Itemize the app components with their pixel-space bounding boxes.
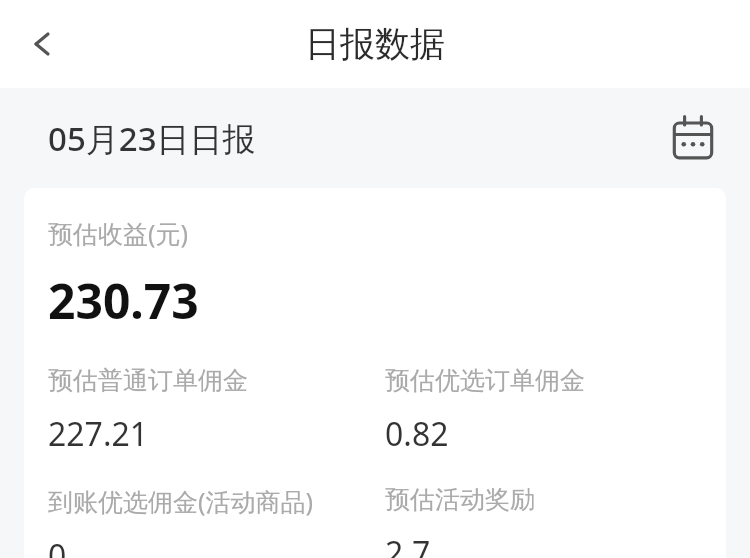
button[interactable]: Select date	[666, 111, 720, 165]
staticText: 227.21	[48, 412, 149, 456]
staticText: 0	[48, 534, 67, 558]
staticText: 到账优选佣金(活动商品)	[48, 484, 314, 518]
staticText: 日报数据	[305, 22, 445, 66]
staticText: 230.73	[48, 268, 199, 333]
staticText: 预估活动奖励	[385, 484, 535, 515]
staticText: 预估优选订单佣金	[385, 365, 585, 396]
button[interactable]: Back	[14, 16, 70, 72]
staticText: 预估普通订单佣金	[48, 365, 248, 396]
button[interactable]: 预估收益(元)	[24, 188, 726, 558]
staticText: 2.7	[385, 531, 431, 558]
staticText: 0.82	[385, 412, 449, 456]
staticText: 05月23日日报	[48, 116, 256, 161]
staticText: 预估收益(元)	[48, 216, 189, 250]
